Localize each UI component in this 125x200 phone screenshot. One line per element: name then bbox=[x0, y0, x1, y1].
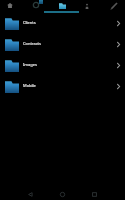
button[interactable]: Accounts bbox=[84, 2, 90, 9]
button[interactable]: Recent apps bbox=[78, 186, 110, 200]
button[interactable]: Back bbox=[14, 186, 46, 200]
button[interactable]: Edit bbox=[108, 1, 119, 11]
button[interactable]: Images bbox=[0, 55, 125, 76]
button[interactable]: Home bbox=[46, 186, 78, 200]
staticText: Images bbox=[23, 62, 37, 67]
button[interactable]: Mobile bbox=[0, 76, 125, 97]
button[interactable]: Recent bbox=[33, 1, 46, 11]
staticText: Clients bbox=[23, 20, 36, 25]
button[interactable]: Folders bbox=[57, 1, 67, 10]
button[interactable]: Contracts bbox=[0, 34, 125, 55]
button[interactable]: Clients bbox=[0, 13, 125, 34]
staticText: Contracts bbox=[23, 41, 41, 46]
button[interactable]: Home bbox=[3, 1, 16, 11]
staticText: Mobile bbox=[23, 83, 36, 88]
